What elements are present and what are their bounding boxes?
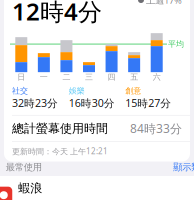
staticText: 日 (17, 72, 25, 82)
staticText: 總計螢幕使用時間 (12, 121, 108, 136)
staticText: 社交 (12, 86, 28, 96)
staticText: 創意 (125, 86, 141, 96)
staticText: 三 (85, 72, 93, 82)
staticText: 最常使用 (6, 161, 42, 173)
staticText: 五 (130, 72, 138, 82)
button[interactable]: 顯示類別 (173, 161, 194, 173)
staticText: 娛樂 (69, 86, 85, 96)
staticText: 15時27分 (125, 96, 171, 110)
staticText: 84時33分 (130, 120, 182, 136)
staticText: 上週17% (146, 0, 182, 6)
staticText: 12時4分 (12, 0, 102, 27)
staticText: 六 (153, 72, 161, 82)
staticText: 平均 (168, 39, 184, 49)
button[interactable]: 蝦浪 (0, 176, 194, 200)
staticText: 16時30分 (69, 96, 115, 110)
staticText: 四 (108, 72, 116, 82)
staticText: 二 (62, 72, 70, 82)
staticText: 一 (40, 72, 48, 82)
staticText: 更新時間：今天 上午12:21 (12, 146, 108, 156)
staticText: 32時23分 (12, 96, 58, 110)
staticText: 蝦浪 (18, 181, 42, 196)
staticText: 顯示類別 (173, 161, 194, 173)
